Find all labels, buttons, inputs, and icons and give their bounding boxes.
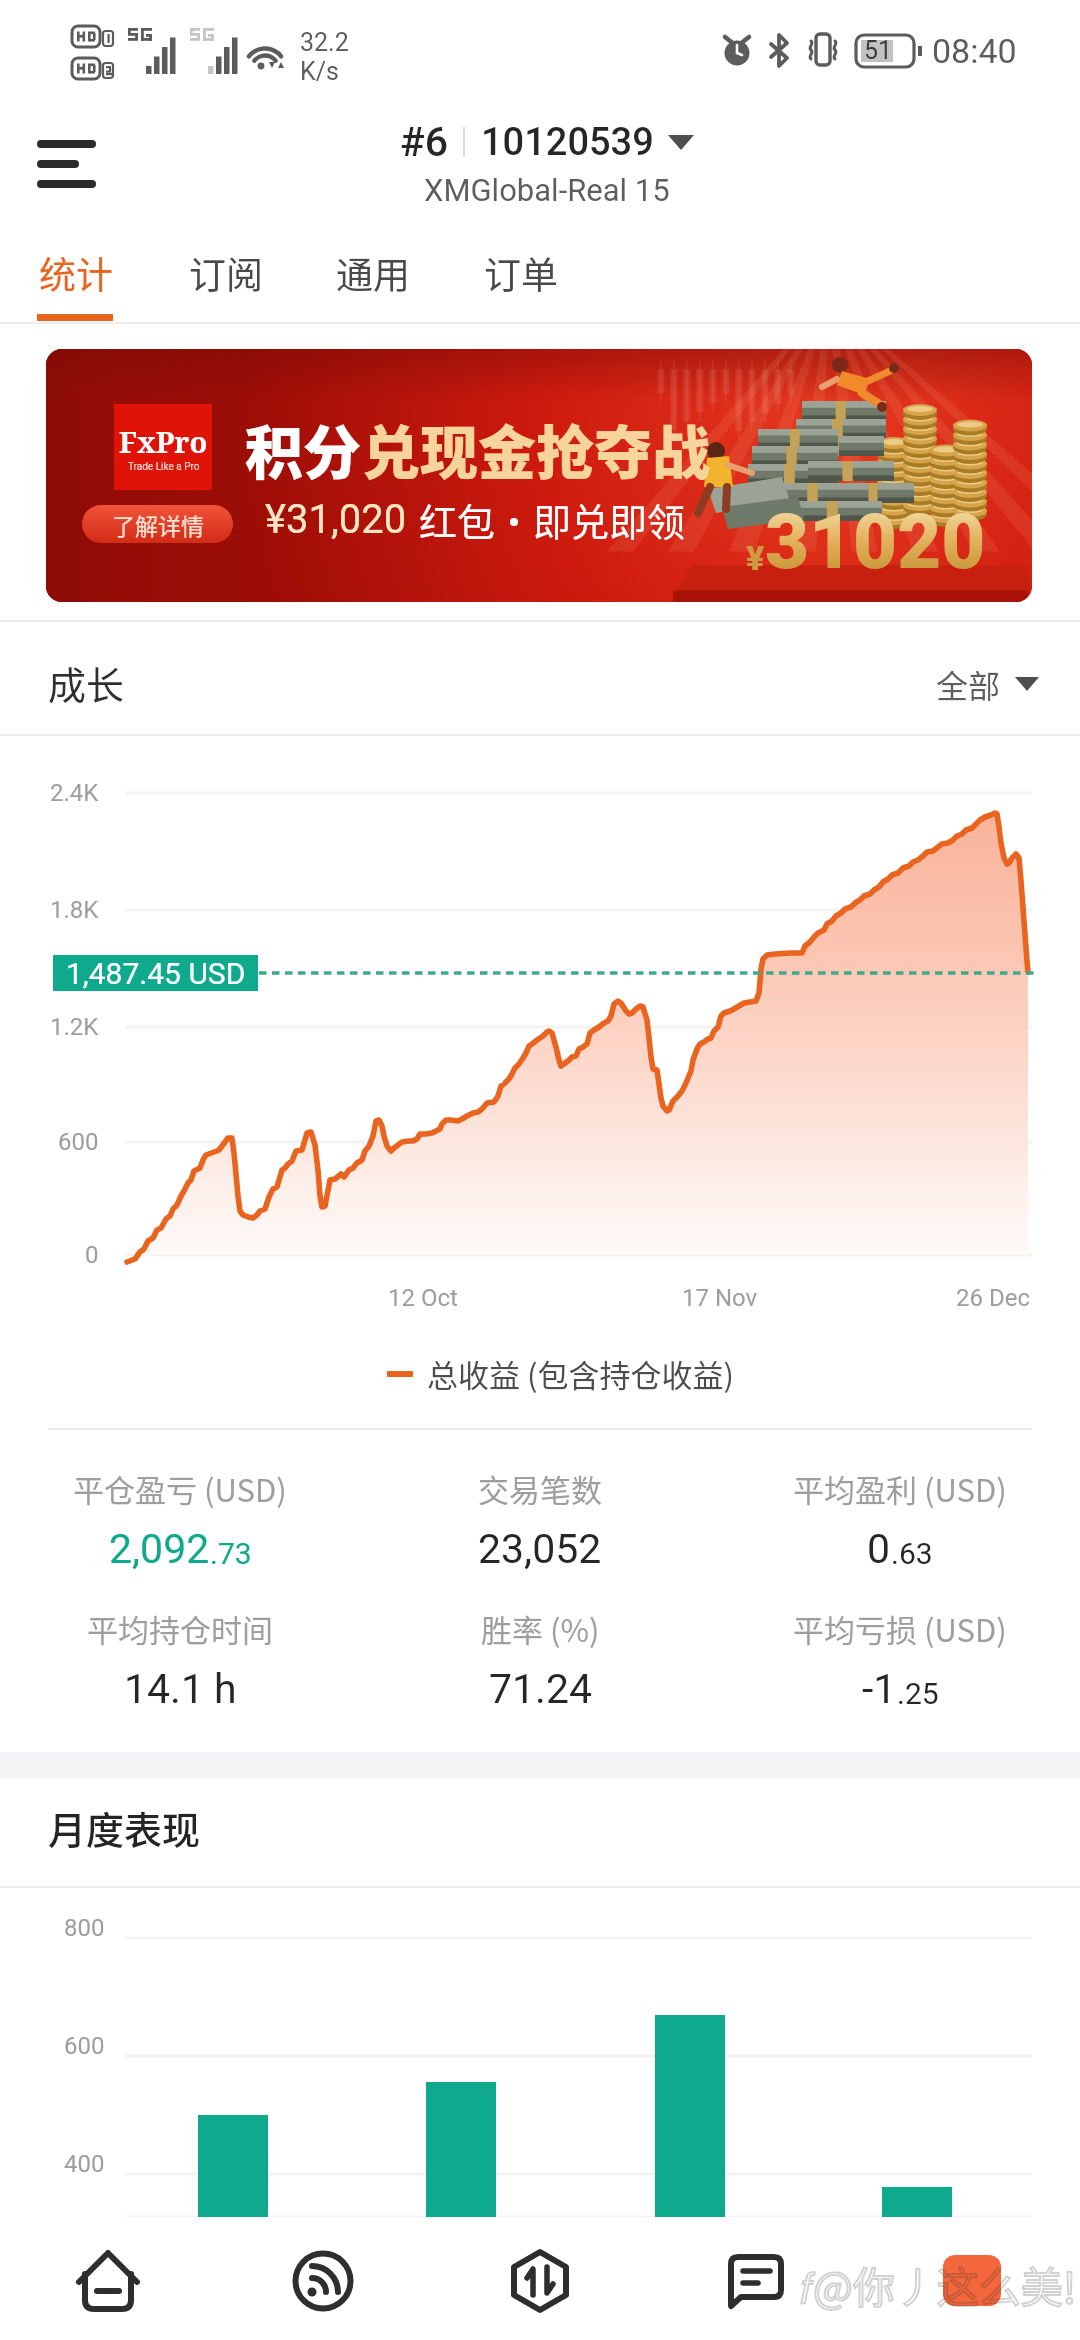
staticText: 订阅 (189, 246, 263, 300)
button[interactable]: Signals (243, 2222, 403, 2340)
staticText: 31020 (765, 497, 986, 586)
staticText: 51 (864, 36, 893, 65)
button[interactable]: 订阅 (159, 238, 293, 324)
staticText: 平仓盈亏 (USD) (73, 1466, 287, 1511)
staticText: 全部 (936, 661, 1001, 707)
staticText: 0 (85, 1241, 99, 1269)
staticText: 平均亏损 (USD) (793, 1606, 1007, 1651)
button[interactable]: Menu (22, 122, 112, 206)
button[interactable]: 订单 (454, 238, 588, 324)
staticText: 月度表现 (48, 1800, 201, 1855)
button[interactable]: Home (28, 2222, 188, 2340)
staticText: 14.1 h (124, 1665, 237, 1713)
staticText: 10120539 (481, 120, 654, 165)
staticText: 积分 (245, 407, 362, 491)
staticText: 𝑓@你丿这么美! (800, 2254, 1077, 2315)
staticText: 成长 (48, 655, 125, 710)
staticText: ¥31,020 (265, 496, 407, 543)
staticText: 兑现金抢夺战 (362, 407, 711, 491)
button[interactable]: #6 (400, 118, 694, 166)
staticText: 0 (867, 1525, 891, 1573)
staticText: .25 (897, 1676, 939, 1711)
staticText: ¥ (746, 538, 765, 578)
staticText: 800 (64, 1914, 105, 1942)
staticText: 26 Dec (956, 1284, 1030, 1312)
staticText: 2,092 (109, 1525, 210, 1573)
button[interactable]: Trade (460, 2222, 620, 2340)
button[interactable]: ¥ (46, 349, 1032, 602)
button[interactable]: 全部 (936, 661, 1039, 707)
staticText: 订单 (484, 246, 558, 300)
staticText: 交易笔数 (478, 1466, 602, 1511)
staticText: 胜率 (%) (481, 1606, 600, 1651)
staticText: 2.4K (50, 779, 99, 807)
staticText: .73 (210, 1536, 252, 1571)
staticText: 1,487.45 USD (66, 956, 246, 991)
staticText: 17 Nov (682, 1284, 758, 1312)
staticText: Trade Like a Pro (128, 461, 200, 473)
staticText: #6 (400, 118, 449, 166)
staticText: 统计 (39, 246, 113, 300)
staticText: 通用 (336, 246, 410, 300)
staticText: 08:40 (932, 31, 1017, 71)
staticText: 600 (58, 1128, 99, 1156)
staticText: 1.2K (50, 1013, 99, 1041)
staticText: 平均持仓时间 (87, 1606, 273, 1651)
staticText: 1.8K (50, 896, 99, 924)
button[interactable]: 统计 (9, 238, 143, 324)
staticText: 平均盈利 (USD) (793, 1466, 1007, 1511)
staticText: 总收益 (包含持仓收益) (427, 1351, 734, 1396)
staticText: 600 (64, 2032, 105, 2060)
staticText: .63 (891, 1536, 933, 1571)
staticText: XMGlobal-Real 15 (424, 172, 670, 208)
staticText: FxPro (119, 422, 208, 461)
staticText: 32.2 (300, 28, 349, 57)
staticText: 400 (64, 2150, 105, 2178)
staticText: 了解详情 (112, 508, 204, 541)
button[interactable]: 了解详情 (82, 505, 233, 543)
staticText: -1 (862, 1665, 897, 1713)
button[interactable]: Chat (676, 2222, 836, 2340)
button[interactable]: 通用 (306, 238, 440, 324)
staticText: 红包·即兑即领 (419, 492, 686, 547)
staticText: 71.24 (489, 1665, 592, 1713)
staticText: 23,052 (478, 1525, 602, 1573)
staticText: 12 Oct (388, 1284, 458, 1312)
staticText: K/s (300, 57, 339, 86)
